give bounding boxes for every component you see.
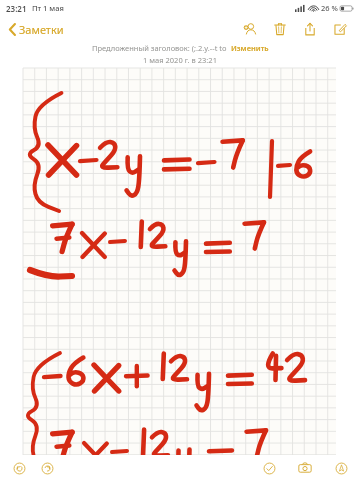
button[interactable]: Delete	[268, 17, 292, 41]
button[interactable]: Markup	[330, 457, 352, 479]
staticText: Изменить	[231, 43, 269, 53]
button[interactable]: Undo	[8, 457, 30, 479]
button[interactable]: Checklist	[258, 457, 280, 479]
button[interactable]: Add people	[238, 17, 262, 41]
staticText: 1 мая 2020 г. в 23:21	[143, 55, 217, 65]
button[interactable]: Camera	[294, 457, 316, 479]
staticText: Предложенный заголовок: (;.2.y.--t to	[92, 43, 227, 53]
staticText: Заметки	[19, 22, 64, 37]
button[interactable]: Redo	[36, 457, 58, 479]
staticText: Пт 1 мая	[32, 3, 64, 13]
staticText: 26 %	[321, 3, 338, 13]
button[interactable]: Изменить	[231, 43, 269, 53]
staticText: 23:21	[6, 3, 27, 14]
button[interactable]: New note	[328, 17, 352, 41]
button[interactable]: Share	[298, 17, 322, 41]
button[interactable]: Заметки	[6, 19, 67, 40]
